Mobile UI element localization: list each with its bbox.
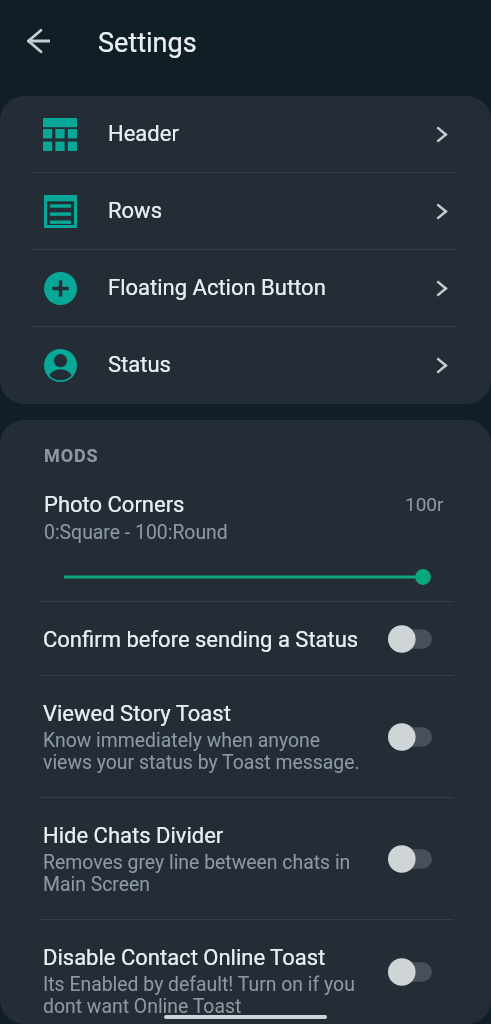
staticText: 0:Square - 100:Round [44,521,228,544]
staticText: Rows [108,198,162,224]
button[interactable]: Header [0,96,491,172]
button[interactable]: Toggle [388,625,432,653]
staticText: Status [108,352,171,378]
staticText: Know immediately when anyone views your … [43,729,360,774]
staticText: Disable Contact Online Toast [43,945,326,971]
staticText: Removes grey line between chats in Main … [43,851,351,896]
button[interactable]: Status [0,327,491,403]
button[interactable]: Rows [0,173,491,249]
staticText: Floating Action Button [108,275,326,301]
button[interactable]: Floating Action Button [0,250,491,326]
button[interactable]: Confirm before sending a Status [0,602,491,675]
staticText: Its Enabled by default! Turn on if you d… [43,973,355,1018]
staticText: MODS [44,445,99,466]
staticText: Settings [98,27,197,59]
button[interactable]: MODS [0,420,491,601]
staticText: Hide Chats Divider [43,823,224,849]
staticText: Header [108,121,179,147]
button[interactable]: Viewed Story Toast [0,676,491,797]
staticText: Viewed Story Toast [43,701,231,727]
staticText: 100r [405,493,444,515]
staticText: Confirm before sending a Status [43,627,359,653]
button[interactable]: Hide Chats Divider [0,798,491,919]
staticText: Photo Corners [44,492,185,518]
button[interactable]: Toggle [388,845,432,873]
button[interactable]: Disable Contact Online Toast [0,920,491,1024]
button[interactable]: Back [20,23,57,59]
button[interactable]: Toggle [388,958,432,986]
button[interactable]: Toggle [388,723,432,751]
